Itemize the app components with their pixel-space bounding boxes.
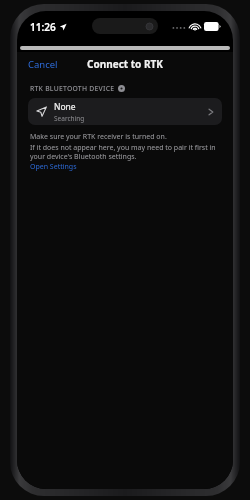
staticText: Cancel <box>28 58 58 71</box>
staticText: None <box>54 101 76 113</box>
staticText: Searching <box>54 114 85 123</box>
staticText: Open Settings <box>30 162 77 172</box>
button[interactable]: More information <box>118 85 125 92</box>
staticText: Make sure your RTK receiver is turned on… <box>30 132 167 142</box>
staticText: Connect to RTK <box>87 57 163 71</box>
button[interactable]: Open Settings <box>30 161 77 174</box>
staticText: If it does not appear here, you may need… <box>30 143 220 161</box>
staticText: 11:26 <box>30 20 56 34</box>
button[interactable]: Cancel <box>17 55 69 74</box>
staticText: RTK BLUETOOTH DEVICE <box>30 84 115 93</box>
button[interactable]: None <box>28 98 222 125</box>
